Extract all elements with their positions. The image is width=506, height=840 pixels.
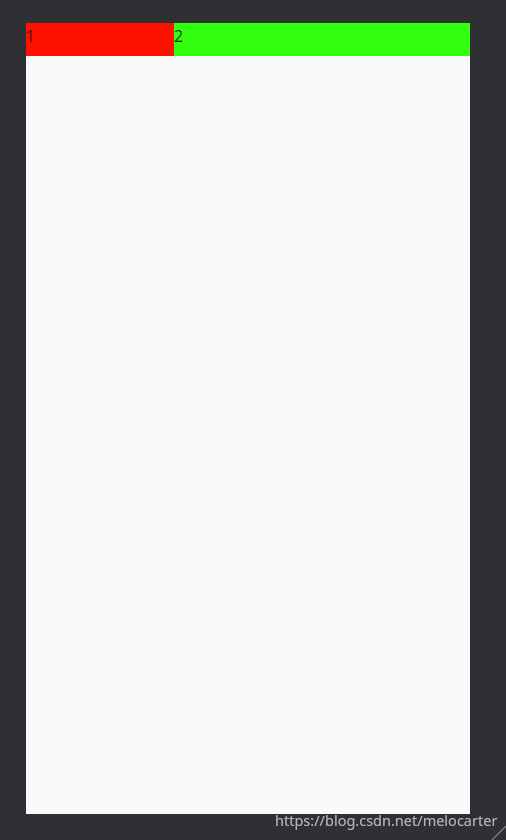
staticText: 2 [174, 25, 184, 47]
button[interactable]: 1 [26, 23, 174, 56]
button[interactable]: 2 [174, 23, 470, 56]
button[interactable]: Resize window [488, 822, 506, 840]
staticText: 1 [26, 25, 36, 47]
staticText: https://blog.csdn.net/melocarter [275, 810, 498, 830]
